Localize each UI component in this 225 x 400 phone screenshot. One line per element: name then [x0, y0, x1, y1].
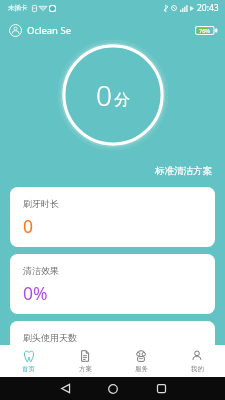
staticText: 我的	[191, 365, 204, 373]
button[interactable]: 刷牙时长	[10, 187, 215, 247]
staticText: 清洁效果	[23, 265, 59, 276]
staticText: 刷牙时长	[23, 198, 59, 209]
button[interactable]: 标准清洁方案	[155, 165, 212, 177]
button[interactable]: 服务	[113, 345, 169, 377]
button[interactable]: 首页	[0, 345, 57, 377]
button[interactable]: Oclean Se	[9, 24, 72, 37]
staticText: 0	[23, 348, 34, 372]
button[interactable]: 我的	[169, 345, 225, 377]
staticText: 76%	[199, 27, 210, 34]
staticText: 0	[23, 214, 34, 238]
button[interactable]: 清洁效果	[10, 254, 215, 314]
staticText: 服务	[135, 365, 148, 373]
staticText: 未插卡	[8, 4, 28, 12]
staticText: 首页	[22, 365, 35, 373]
staticText: 0%	[23, 281, 48, 305]
staticText: Oclean Se	[27, 24, 72, 37]
staticText: 方案	[79, 365, 92, 373]
button[interactable]: Back	[41, 377, 89, 400]
staticText: 标准清洁方案	[155, 165, 212, 177]
button[interactable]: Home	[89, 377, 137, 400]
button[interactable]: Battery level	[195, 26, 218, 35]
button[interactable]: Recent apps	[137, 377, 185, 400]
staticText: 20:43	[197, 2, 219, 14]
staticText: 0	[96, 76, 112, 114]
button[interactable]: 方案	[57, 345, 113, 377]
button[interactable]: 刷头使用天数	[10, 321, 215, 381]
staticText: 刷头使用天数	[23, 332, 77, 343]
staticText: 分	[114, 90, 130, 110]
